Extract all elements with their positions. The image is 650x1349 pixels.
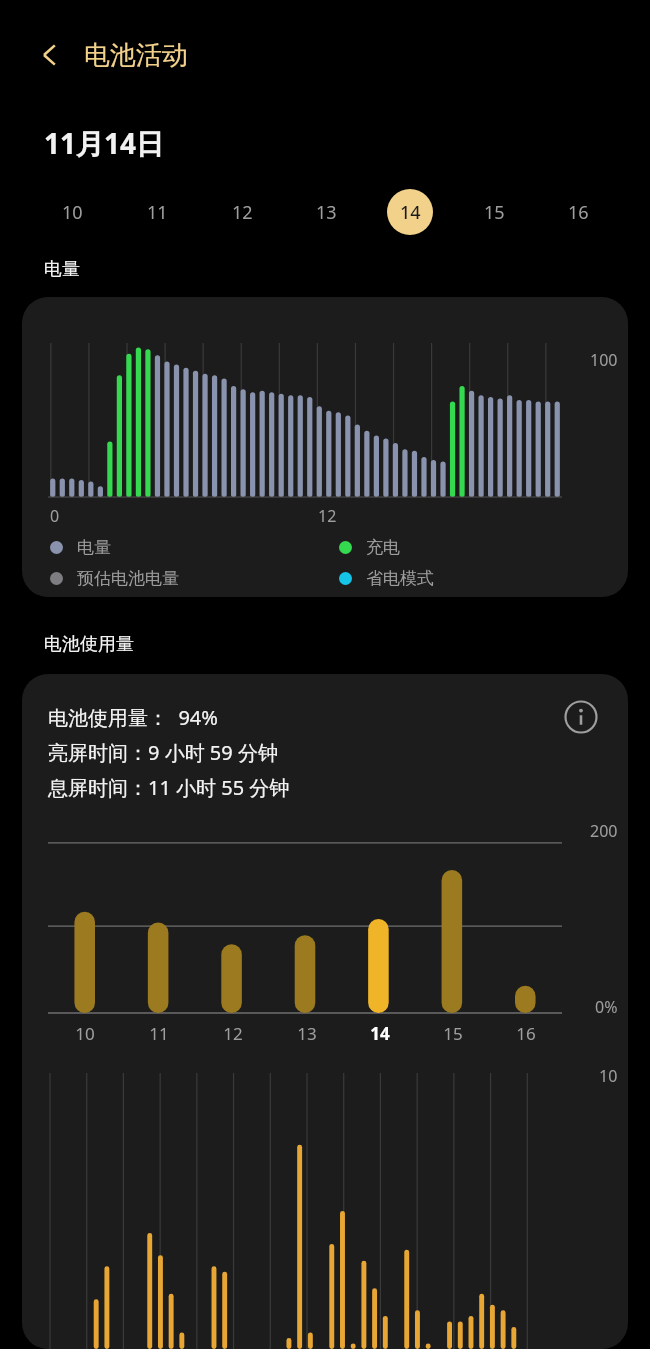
staticText: 0% bbox=[595, 996, 618, 1018]
staticText: 11月14日 bbox=[44, 124, 165, 162]
staticText: 息屏时间：11 小时 55 分钟 bbox=[48, 774, 290, 801]
button[interactable]: Back bbox=[26, 31, 74, 79]
staticText: 12 bbox=[232, 200, 253, 225]
button[interactable]: 15 bbox=[452, 184, 536, 240]
staticText: 14 bbox=[400, 200, 421, 225]
staticText: 电池活动 bbox=[84, 39, 188, 72]
staticText: 16 bbox=[568, 200, 589, 225]
staticText: 10 bbox=[599, 1065, 618, 1087]
staticText: 13 bbox=[297, 1022, 317, 1045]
button[interactable]: 16 bbox=[536, 184, 620, 240]
button[interactable]: Info bbox=[560, 696, 602, 738]
button[interactable]: 11 bbox=[115, 184, 200, 240]
button[interactable]: 13 bbox=[284, 184, 368, 240]
staticText: 亮屏时间：9 小时 59 分钟 bbox=[48, 739, 278, 766]
staticText: 0 bbox=[50, 505, 60, 527]
staticText: 预估电池电量 bbox=[77, 568, 179, 589]
button[interactable]: 电池使用量： 94% bbox=[22, 674, 628, 1349]
staticText: 11 bbox=[147, 200, 168, 225]
staticText: 电量 bbox=[44, 258, 80, 281]
staticText: 12 bbox=[318, 505, 337, 527]
staticText: 电池使用量： 94% bbox=[48, 704, 218, 731]
staticText: 10 bbox=[62, 200, 83, 225]
staticText: 15 bbox=[443, 1022, 463, 1045]
staticText: 15 bbox=[484, 200, 505, 225]
staticText: 电池使用量 bbox=[44, 633, 134, 656]
button[interactable]: 10 bbox=[30, 184, 115, 240]
staticText: 14 bbox=[370, 1022, 390, 1045]
staticText: 100 bbox=[590, 349, 618, 371]
button[interactable]: 14 bbox=[368, 184, 452, 240]
button[interactable]: 12 bbox=[200, 184, 284, 240]
staticText: 200 bbox=[590, 820, 618, 842]
staticText: 12 bbox=[223, 1022, 243, 1045]
staticText: 16 bbox=[516, 1022, 536, 1045]
staticText: 电量 bbox=[77, 537, 111, 558]
staticText: 省电模式 bbox=[366, 568, 434, 589]
staticText: 11 bbox=[149, 1022, 169, 1045]
staticText: 充电 bbox=[366, 537, 400, 558]
staticText: 13 bbox=[316, 200, 337, 225]
staticText: 10 bbox=[75, 1022, 95, 1045]
button[interactable]: 100 bbox=[22, 297, 628, 597]
